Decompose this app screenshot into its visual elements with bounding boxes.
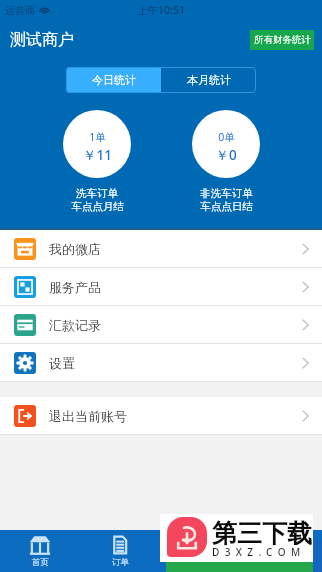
- staticText: 我的微店: [49, 241, 101, 257]
- staticText: 设置: [49, 355, 75, 371]
- staticText: 退出当前账号: [49, 408, 127, 424]
- button[interactable]: 订单: [80, 530, 160, 572]
- button[interactable]: 本月统计: [161, 67, 256, 93]
- staticText: 联系我们: [265, 557, 299, 568]
- button[interactable]: 我的微店: [0, 230, 322, 268]
- button[interactable]: 汇款记录: [0, 306, 322, 344]
- staticText: 首页: [32, 557, 49, 568]
- staticText: ￥0: [215, 146, 237, 164]
- staticText: D3XZ.COM: [212, 545, 306, 559]
- staticText: ￥11: [83, 146, 112, 164]
- staticText: 洗车订单: [76, 187, 118, 200]
- staticText: 所有财务统计: [254, 34, 311, 46]
- staticText: 0单: [218, 130, 235, 144]
- staticText: 车点点月结: [71, 200, 124, 213]
- button[interactable]: 首页: [0, 530, 80, 572]
- staticText: 上午10:51: [137, 3, 185, 17]
- button[interactable]: 商户中心: [160, 530, 241, 572]
- button[interactable]: 退出当前账号: [0, 397, 322, 435]
- button[interactable]: 设置: [0, 344, 322, 382]
- staticText: 1单: [89, 130, 106, 144]
- staticText: 非洗车订单: [200, 187, 253, 200]
- staticText: 本月统计: [187, 73, 231, 87]
- staticText: 商户中心: [184, 557, 218, 568]
- staticText: 服务产品: [49, 279, 101, 295]
- staticText: 汇款记录: [49, 317, 101, 333]
- button[interactable]: 联系我们: [241, 530, 322, 572]
- staticText: 测试商户: [10, 30, 74, 50]
- staticText: 订单: [112, 557, 129, 568]
- staticText: 今日统计: [92, 73, 136, 87]
- button[interactable]: 服务产品: [0, 268, 322, 306]
- staticText: 车点点日结: [200, 200, 253, 213]
- staticText: 第三下载: [212, 518, 312, 549]
- button[interactable]: 所有财务统计: [250, 30, 314, 50]
- staticText: 运营商: [5, 4, 35, 17]
- button[interactable]: 今日统计: [66, 67, 161, 93]
